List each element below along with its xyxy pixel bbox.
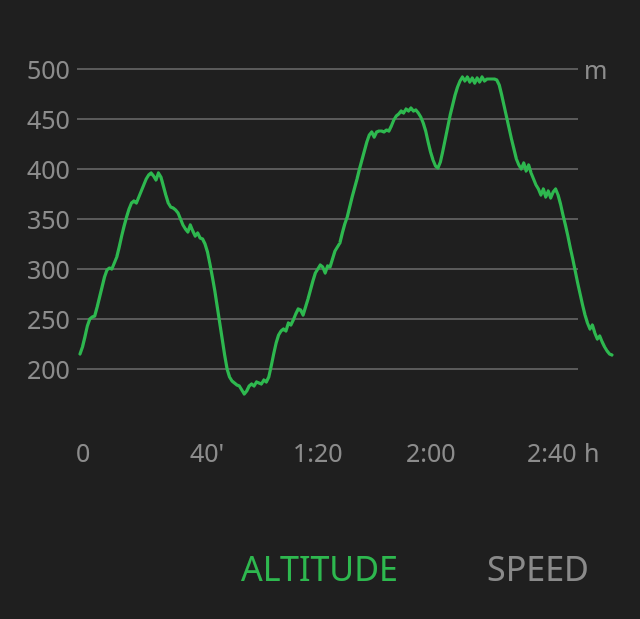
staticText: 350: [27, 202, 70, 236]
staticText: 250: [27, 302, 70, 336]
staticText: h: [584, 435, 600, 469]
staticText: 500: [27, 52, 70, 86]
staticText: 1:20: [293, 435, 343, 469]
staticText: ALTITUDE: [241, 545, 398, 591]
staticText: 0: [76, 435, 91, 469]
staticText: 450: [27, 102, 70, 136]
staticText: m: [584, 52, 608, 86]
staticText: 200: [27, 352, 70, 386]
button[interactable]: ALTITUDE tab, selected: [227, 537, 412, 599]
staticText: 2:00: [406, 435, 456, 469]
staticText: 40': [190, 435, 225, 469]
staticText: SPEED: [487, 545, 589, 591]
staticText: 400: [27, 152, 70, 186]
button[interactable]: SPEED tab: [473, 537, 603, 599]
staticText: 300: [27, 252, 70, 286]
staticText: 2:40: [527, 435, 577, 469]
